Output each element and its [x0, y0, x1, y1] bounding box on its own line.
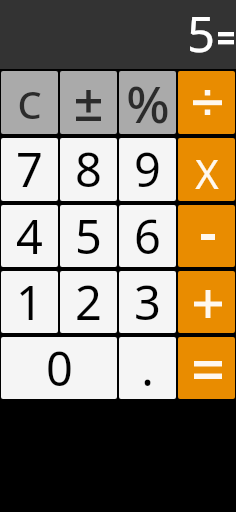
staticText: . [141, 337, 154, 398]
button[interactable]: Plus [178, 271, 235, 333]
button[interactable]: Plus minus [60, 71, 117, 134]
button[interactable]: 2 [60, 271, 117, 333]
button[interactable]: C [1, 71, 58, 134]
button[interactable]: 4 [1, 205, 58, 267]
button[interactable]: 8 [60, 138, 117, 201]
staticText: 5 [75, 205, 102, 266]
button[interactable]: Divide [178, 71, 235, 134]
button[interactable]: % [119, 71, 176, 134]
button[interactable]: 3 [119, 271, 176, 333]
button[interactable]: 6 [119, 205, 176, 267]
staticText: 4 [16, 205, 43, 266]
staticText: 5 [187, 0, 216, 58]
button[interactable]: 1 [1, 271, 58, 333]
button[interactable]: X [178, 138, 235, 201]
button[interactable]: Equals [178, 337, 235, 399]
button[interactable]: 5 [60, 205, 117, 267]
staticText: 1 [16, 271, 43, 332]
staticText: % [126, 71, 170, 131]
staticText: 6 [134, 205, 161, 266]
button[interactable]: Minus [178, 205, 235, 267]
staticText: C [17, 78, 42, 130]
button[interactable]: 0 [1, 337, 117, 399]
staticText: 9 [134, 138, 161, 200]
button[interactable]: 9 [119, 138, 176, 201]
staticText: 7 [16, 138, 43, 200]
staticText: 0 [46, 337, 73, 398]
staticText: 3 [134, 271, 161, 332]
button[interactable]: 7 [1, 138, 58, 201]
staticText: 8 [75, 138, 102, 200]
staticText: 2 [75, 271, 102, 332]
staticText: X [195, 146, 219, 200]
button[interactable]: . [119, 337, 176, 399]
